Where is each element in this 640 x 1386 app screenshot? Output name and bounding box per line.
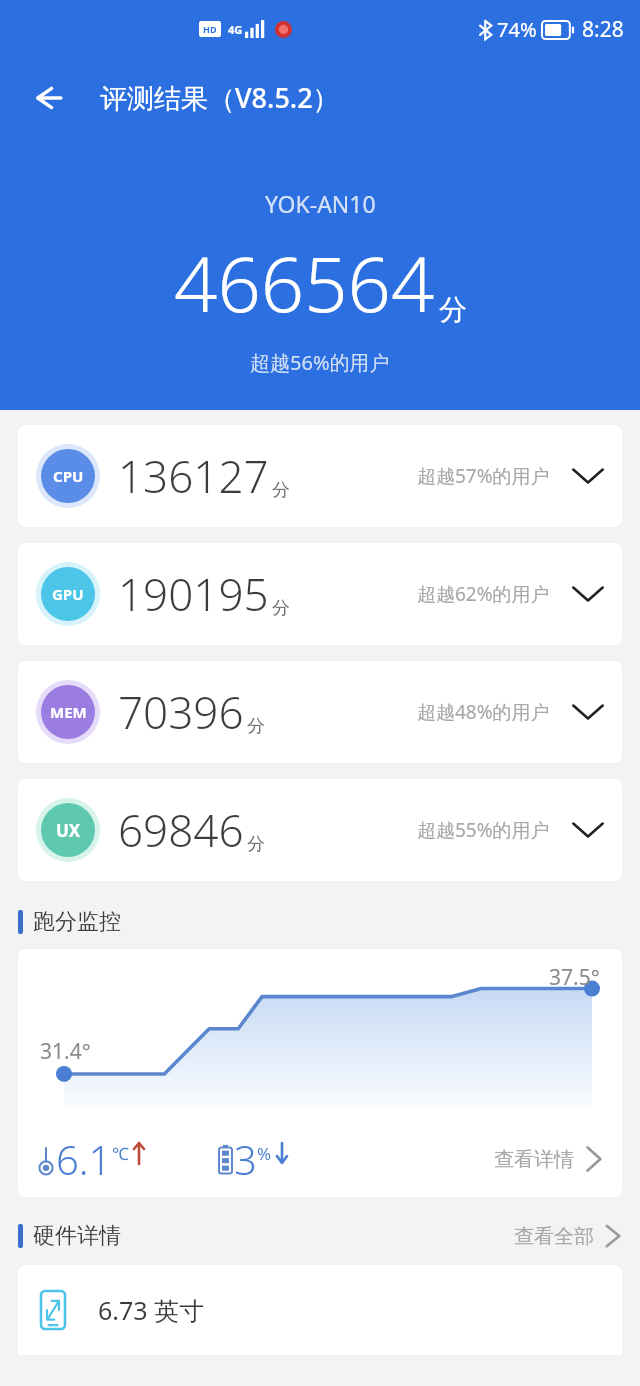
button[interactable]: 6.73 英寸 — [18, 1265, 622, 1355]
staticText: ℃ — [112, 1142, 129, 1165]
staticText: MEM — [50, 702, 87, 722]
staticText: % — [257, 1142, 272, 1165]
staticText: 70396 — [118, 682, 244, 742]
staticText: 硬件详情 — [33, 1222, 121, 1250]
staticText: 分 — [247, 715, 265, 738]
staticText: 31.4° — [40, 1037, 91, 1066]
staticText: GPU — [52, 584, 84, 604]
staticText: 超越62%的用户 — [417, 581, 550, 607]
button[interactable]: MEM — [18, 661, 622, 763]
staticText: 69846 — [118, 800, 244, 860]
staticText: 评测结果（V8.5.2） — [100, 79, 340, 116]
staticText: 136127 — [118, 446, 269, 506]
staticText: 466564 — [174, 231, 435, 335]
button[interactable]: CPU — [18, 425, 622, 527]
button[interactable]: GPU — [18, 543, 622, 645]
staticText: YOK-AN10 — [265, 188, 376, 219]
staticText: CPU — [53, 466, 84, 486]
staticText: 查看全部 — [514, 1224, 594, 1249]
staticText: 分 — [272, 479, 290, 502]
button[interactable]: UX — [18, 779, 622, 881]
staticText: 查看详情 — [494, 1147, 574, 1172]
staticText: 超越57%的用户 — [417, 463, 550, 489]
staticText: 74% — [497, 16, 537, 43]
staticText: 190195 — [118, 564, 269, 624]
staticText: 超越48%的用户 — [417, 699, 550, 725]
staticText: 跑分监控 — [33, 908, 121, 936]
button[interactable]: 查看详情 — [494, 1141, 604, 1177]
staticText: 4G — [228, 22, 243, 37]
staticText: 分 — [439, 292, 467, 327]
button[interactable]: 查看全部 — [514, 1221, 622, 1251]
staticText: 6.73 英寸 — [98, 1293, 205, 1327]
staticText: 6.1 — [56, 1132, 112, 1186]
staticText: 37.5° — [549, 963, 600, 992]
staticText: 分 — [247, 833, 265, 856]
staticText: UX — [56, 819, 81, 842]
staticText: 分 — [272, 597, 290, 620]
staticText: 超越55%的用户 — [417, 817, 550, 843]
staticText: 8:28 — [582, 15, 624, 44]
button[interactable]: Back — [20, 70, 76, 126]
staticText: HD — [203, 23, 217, 35]
staticText: 超越56%的用户 — [250, 349, 390, 376]
staticText: 3 — [234, 1132, 257, 1186]
